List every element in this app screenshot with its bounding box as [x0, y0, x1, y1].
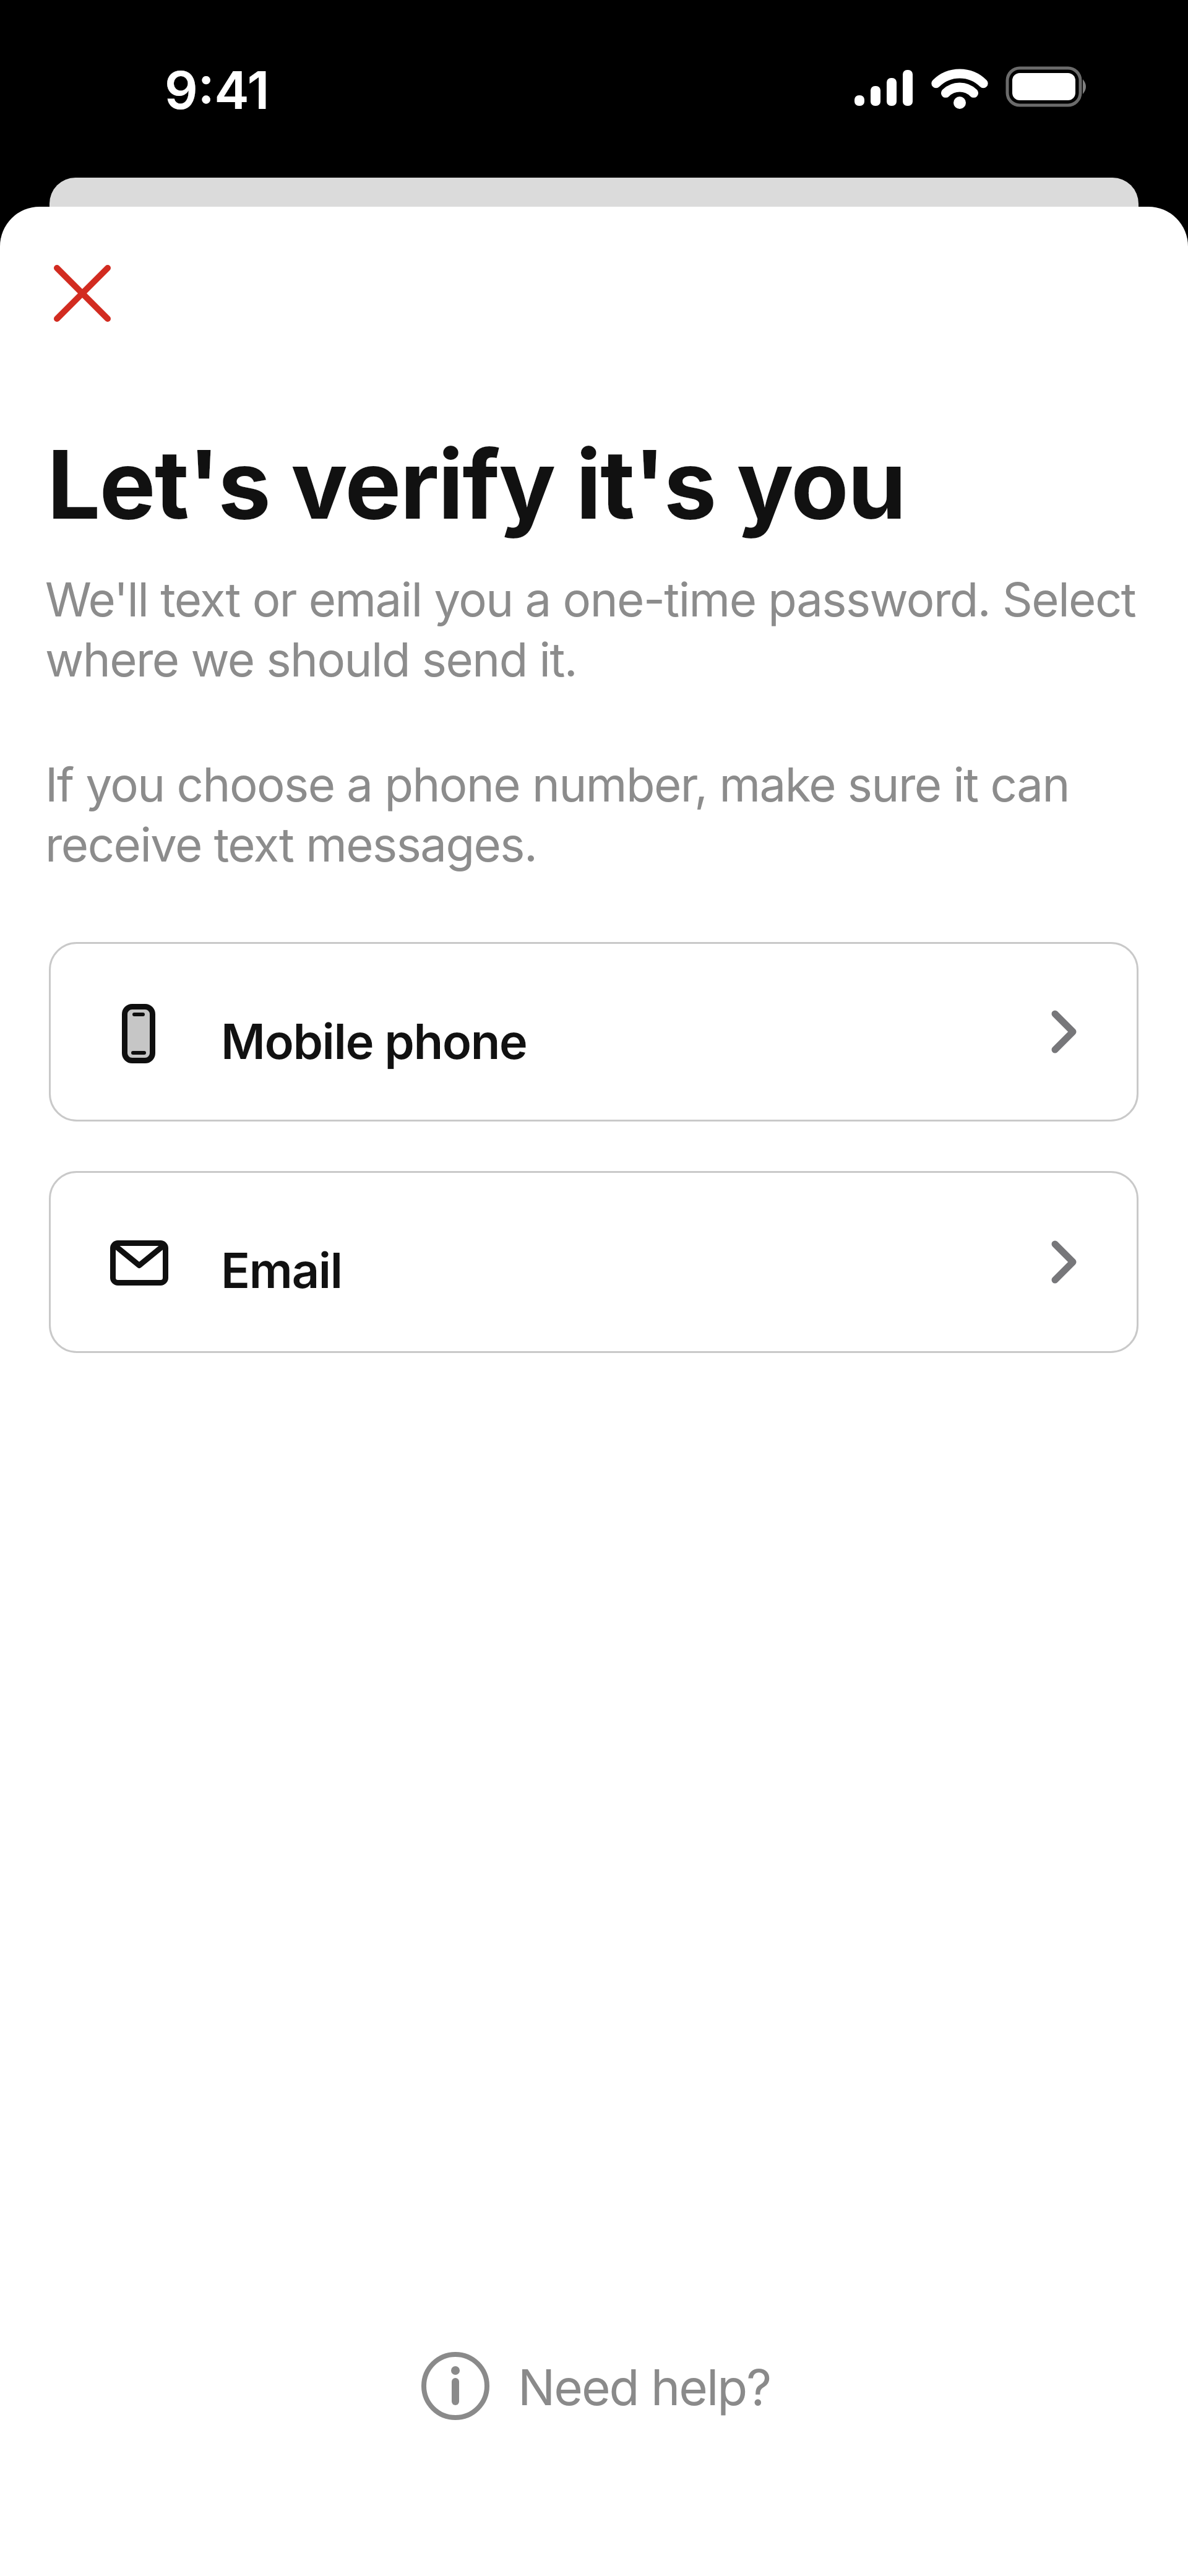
staticText: Email — [221, 1241, 342, 1299]
staticText: If you choose a phone number, make sure … — [45, 756, 1069, 873]
button[interactable] — [49, 261, 115, 326]
staticText: Mobile phone — [221, 1012, 527, 1070]
staticText: 9:41 — [165, 59, 270, 122]
button[interactable]: Mobile phone — [49, 942, 1138, 1122]
button[interactable]: Need help? — [403, 2333, 786, 2439]
staticText: We'll text or email you a one-time passw… — [45, 571, 1136, 688]
button[interactable]: Email — [49, 1171, 1138, 1353]
staticText: Let's verify it's you — [47, 427, 905, 542]
staticText: Need help? — [518, 2357, 771, 2417]
